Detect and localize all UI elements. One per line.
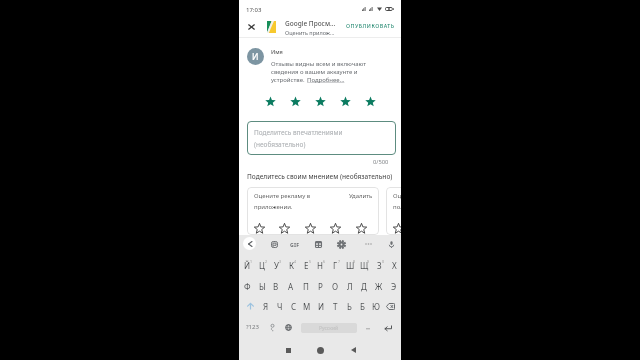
button[interactable]: Щ <box>357 257 371 273</box>
button[interactable]: Ь <box>342 298 356 314</box>
button[interactable]: Н <box>313 257 327 273</box>
button[interactable]: Change language <box>282 320 295 335</box>
button[interactable]: Т <box>328 298 342 314</box>
staticText: 17:03 <box>246 6 262 14</box>
button[interactable]: У <box>269 257 283 273</box>
staticText: С <box>291 301 297 312</box>
staticText: 1 <box>250 259 253 264</box>
button[interactable]: И <box>314 298 328 314</box>
button[interactable]: С <box>287 298 301 314</box>
button[interactable]: Ц <box>255 257 269 273</box>
button[interactable]: Р <box>313 278 327 294</box>
staticText: 4 <box>294 259 297 264</box>
staticText: 3 <box>279 259 282 264</box>
staticText: У <box>274 260 279 271</box>
staticText: ОПУБЛИКОВАТЬ <box>346 22 395 29</box>
staticText: Подробнее… <box>307 76 345 84</box>
staticText: Ф <box>244 281 251 292</box>
button[interactable]: Shift <box>243 298 257 314</box>
button[interactable]: М <box>300 298 314 314</box>
staticText: И <box>252 51 259 63</box>
button[interactable]: GIF <box>288 239 302 249</box>
button[interactable]: ОПУБЛИКОВАТЬ <box>341 16 399 34</box>
button[interactable]: Emoji <box>266 320 279 335</box>
button[interactable]: Ф <box>240 278 254 294</box>
button[interactable]: Back <box>243 237 256 250</box>
staticText: Б <box>360 301 365 312</box>
staticText: Имя <box>271 48 283 55</box>
button[interactable]: Back <box>344 341 362 359</box>
button[interactable]: Подробнее… <box>307 76 345 84</box>
button[interactable]: К <box>284 257 298 273</box>
button[interactable]: Voice input <box>385 238 397 250</box>
button[interactable]: Rate 5 stars <box>365 96 376 107</box>
button[interactable]: З <box>372 257 386 273</box>
staticText: 0 <box>382 259 385 264</box>
button[interactable]: Д <box>357 278 371 294</box>
button[interactable]: Rate 1 stars <box>265 96 276 107</box>
button[interactable]: О <box>328 278 342 294</box>
button[interactable]: Rate 2 stars <box>290 96 301 107</box>
button[interactable]: В <box>269 278 283 294</box>
button[interactable]: Sticker <box>268 238 280 250</box>
button[interactable]: Е <box>299 257 313 273</box>
button[interactable]: Rate 5 <box>354 221 368 235</box>
button[interactable]: Ж <box>372 278 386 294</box>
button[interactable]: Ю <box>369 298 383 314</box>
button[interactable]: More options <box>363 239 374 249</box>
button[interactable]: Удалить <box>349 192 373 200</box>
button[interactable]: Б <box>355 298 369 314</box>
button[interactable]: Recent apps <box>279 341 297 359</box>
button[interactable]: Rate 4 <box>328 221 342 235</box>
button[interactable]: Э <box>387 278 401 294</box>
button[interactable]: Я <box>259 298 273 314</box>
staticText: 9 <box>367 259 370 264</box>
button[interactable]: Backspace <box>383 298 398 314</box>
button[interactable]: Оцените рекламу в приложении. <box>247 187 379 235</box>
staticText: Я <box>263 301 269 312</box>
staticText: В <box>273 281 279 292</box>
staticText: П <box>303 281 309 292</box>
staticText: 8 <box>353 259 356 264</box>
button[interactable]: Л <box>343 278 357 294</box>
button[interactable]: Ы <box>255 278 269 294</box>
staticText: Щ <box>360 260 369 271</box>
button[interactable]: Й <box>240 257 254 273</box>
button[interactable]: Оцените полезность приложения… <box>386 187 401 235</box>
staticText: Удалить <box>349 192 373 200</box>
button[interactable]: ?123 <box>242 319 263 334</box>
staticText: Отзывы видны всем и включают <box>271 60 367 68</box>
button[interactable]: Home <box>311 341 329 359</box>
button[interactable]: Rate 1 <box>391 221 401 235</box>
button[interactable]: Ш <box>343 257 357 273</box>
button[interactable]: Rate 2 <box>277 221 291 235</box>
staticText: М <box>303 301 311 312</box>
staticText: Русский <box>319 325 339 332</box>
button[interactable]: Settings <box>335 238 347 250</box>
staticText: О <box>332 281 339 292</box>
staticText: Ж <box>375 281 383 292</box>
staticText: А <box>288 281 294 292</box>
button[interactable]: А <box>284 278 298 294</box>
button[interactable]: Enter <box>380 320 395 335</box>
staticText: Ь <box>347 301 352 312</box>
staticText: GIF <box>290 241 300 248</box>
button[interactable]: Х <box>387 257 401 273</box>
staticText: Оцените рекламу в приложении. <box>254 192 314 211</box>
button[interactable]: Rate 3 <box>303 221 317 235</box>
button[interactable]: Г <box>328 257 342 273</box>
button[interactable]: Rate 3 stars <box>315 96 326 107</box>
button[interactable]: Поделитесь впечатлениями <box>247 121 396 155</box>
button[interactable]: Close <box>241 17 261 37</box>
button[interactable]: Ч <box>273 298 287 314</box>
button[interactable]: Rate 4 stars <box>340 96 351 107</box>
button[interactable]: Rate 1 <box>252 221 266 235</box>
staticText: Ю <box>372 301 380 312</box>
button[interactable]: П <box>299 278 313 294</box>
button[interactable]: Русский <box>301 323 357 333</box>
button[interactable]: Clipboard <box>312 238 324 250</box>
staticText: 7 <box>338 259 341 264</box>
staticText: Поделитесь впечатлениями <box>254 128 343 137</box>
button[interactable] <box>362 320 374 335</box>
staticText: Д <box>361 281 367 292</box>
